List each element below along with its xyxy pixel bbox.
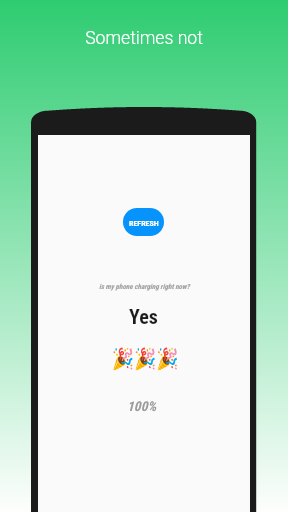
staticText: 🎉🎉🎉 xyxy=(112,347,179,371)
button[interactable]: REFRESH xyxy=(123,208,164,236)
staticText: 100% xyxy=(127,398,157,414)
staticText: is my phone charging right now? xyxy=(99,283,190,291)
staticText: REFRESH xyxy=(129,219,159,228)
staticText: Sometimes not xyxy=(85,28,203,49)
staticText: Yes xyxy=(129,305,158,328)
